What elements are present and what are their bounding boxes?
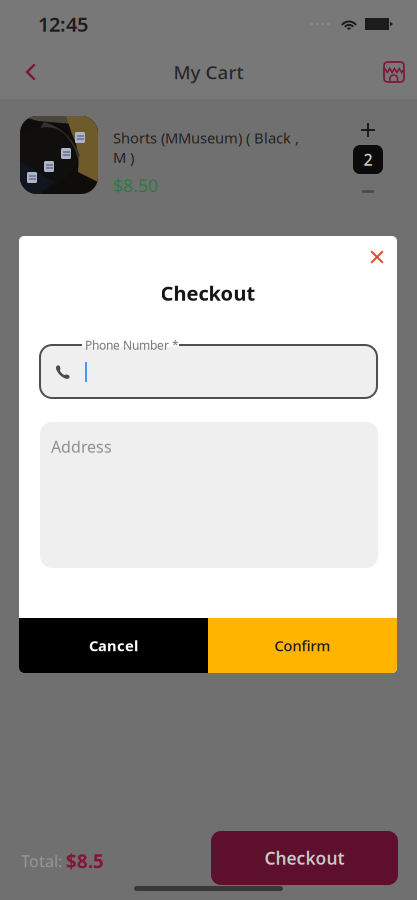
staticText: Address xyxy=(51,436,112,457)
staticText: Checkout xyxy=(264,846,344,869)
button[interactable]: Close xyxy=(358,240,396,274)
staticText: $8.5 xyxy=(66,849,104,873)
staticText: 2 xyxy=(363,149,372,170)
staticText: Confirm xyxy=(274,636,330,655)
staticText: Checkout xyxy=(160,280,255,306)
staticText: Shorts (MMuseum) ( Black , M ) xyxy=(113,128,299,167)
button[interactable]: Confirm xyxy=(208,618,397,673)
button[interactable]: Increase quantity xyxy=(351,116,385,144)
button[interactable]: Decrease quantity xyxy=(351,180,385,204)
button[interactable]: Checkout xyxy=(211,831,398,885)
staticText: Total: xyxy=(21,850,62,872)
staticText: Phone Number * xyxy=(85,337,179,353)
button[interactable]: Store xyxy=(372,48,416,96)
staticText: My Cart xyxy=(173,60,243,84)
staticText: 12:45 xyxy=(38,11,88,37)
button[interactable]: Back xyxy=(9,48,53,96)
staticText: Cancel xyxy=(89,636,138,655)
button[interactable]: Cancel xyxy=(19,618,208,673)
staticText: $8.50 xyxy=(113,174,158,197)
